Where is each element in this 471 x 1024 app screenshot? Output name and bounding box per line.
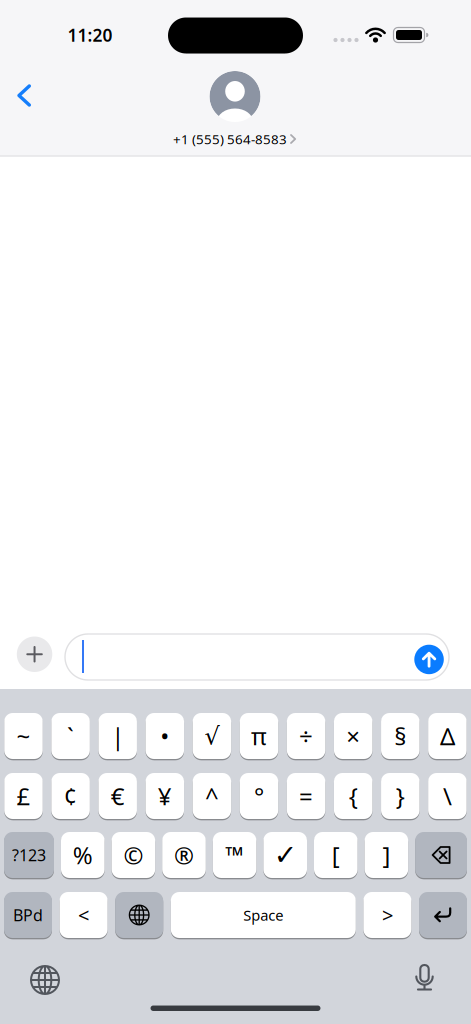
button[interactable] — [115, 892, 163, 938]
staticText: © — [123, 839, 143, 871]
staticText: > — [382, 902, 393, 928]
button[interactable]: % — [61, 832, 105, 878]
button[interactable]: ^ — [193, 773, 231, 819]
staticText: \ — [443, 780, 452, 812]
staticText: 11:20 — [67, 23, 112, 46]
button[interactable]: ✓ — [263, 832, 307, 878]
button[interactable]: BPd — [4, 892, 52, 938]
button[interactable] — [414, 963, 435, 992]
button[interactable]: § — [381, 713, 420, 759]
button[interactable]: • — [146, 713, 184, 759]
staticText: ] — [382, 839, 390, 871]
staticText: ~ — [16, 720, 30, 752]
staticText: × — [346, 720, 360, 752]
button[interactable]: = — [287, 773, 325, 819]
staticText: % — [73, 839, 93, 871]
staticText: Space — [243, 905, 283, 925]
staticText: ^ — [205, 780, 219, 812]
staticText: +1 (555) 564-8583 — [173, 130, 287, 148]
staticText: √ — [204, 722, 219, 750]
staticText: ` — [67, 720, 74, 752]
button[interactable]: < — [60, 892, 108, 938]
button[interactable] — [29, 964, 61, 996]
button[interactable] — [419, 892, 467, 938]
staticText: £ — [16, 780, 30, 812]
button[interactable]: × — [334, 713, 372, 759]
button[interactable]: ÷ — [287, 713, 325, 759]
staticText: < — [78, 902, 89, 928]
staticText: | — [111, 720, 124, 752]
staticText: ✓ — [274, 839, 297, 871]
button[interactable]: ` — [51, 713, 90, 759]
button[interactable]: © — [112, 832, 155, 878]
button[interactable] — [65, 634, 449, 680]
button[interactable]: \ — [428, 773, 467, 819]
button[interactable]: [ — [314, 832, 358, 878]
button[interactable]: £ — [4, 773, 43, 819]
button[interactable]: > — [363, 892, 411, 938]
staticText: ™ — [225, 839, 244, 871]
staticText: = — [299, 780, 313, 812]
staticText: ¥ — [158, 780, 172, 812]
button[interactable] — [415, 832, 467, 878]
staticText: BPd — [13, 904, 43, 926]
button[interactable]: √ — [193, 713, 231, 759]
staticText: ÷ — [299, 720, 313, 752]
button[interactable]: ?123 — [4, 832, 54, 878]
button[interactable]: ¥ — [146, 773, 184, 819]
button[interactable]: | — [98, 713, 137, 759]
staticText: • — [160, 720, 169, 752]
staticText: Δ — [440, 720, 455, 752]
button[interactable]: € — [98, 773, 137, 819]
button[interactable]: ¢ — [51, 773, 90, 819]
staticText: § — [394, 720, 406, 752]
staticText: π — [251, 720, 267, 752]
staticText: { — [349, 780, 358, 812]
button[interactable]: ° — [240, 773, 278, 819]
button[interactable]: Space — [171, 892, 356, 938]
button[interactable]: ~ — [4, 713, 43, 759]
button[interactable]: { — [334, 773, 372, 819]
staticText: } — [396, 780, 405, 812]
button[interactable] — [414, 645, 444, 674]
button[interactable]: Δ — [428, 713, 467, 759]
button[interactable]: +1 (555) 564-8583 — [155, 71, 315, 147]
button[interactable]: ® — [162, 832, 206, 878]
button[interactable]: } — [381, 773, 420, 819]
staticText: ® — [174, 839, 194, 871]
staticText: ?123 — [12, 844, 46, 866]
button[interactable]: ] — [365, 832, 408, 878]
staticText: [ — [332, 839, 340, 871]
staticText: ¢ — [64, 780, 78, 812]
button[interactable]: ™ — [213, 832, 256, 878]
staticText: ° — [254, 780, 264, 812]
button[interactable]: π — [240, 713, 278, 759]
button[interactable] — [17, 636, 52, 672]
staticText: € — [111, 780, 125, 812]
button[interactable] — [17, 84, 33, 107]
